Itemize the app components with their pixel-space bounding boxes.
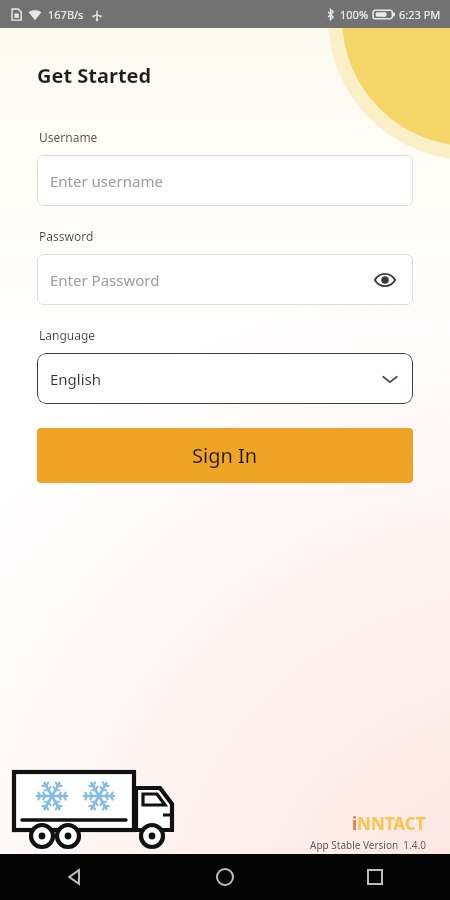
staticText: Password: [39, 228, 94, 244]
staticText: English: [50, 369, 382, 389]
button[interactable]: Back: [0, 854, 150, 900]
staticText: 167B/s: [48, 7, 84, 22]
button[interactable]: English: [37, 353, 413, 404]
button[interactable]: Sign In: [37, 428, 413, 483]
button[interactable]: Enter Password: [37, 254, 413, 305]
staticText: App Stable Version 1.4.0: [310, 838, 426, 852]
button[interactable]: Recent apps: [300, 854, 450, 900]
button[interactable]: Show password: [370, 265, 400, 295]
staticText: 6:23 PM: [399, 7, 441, 22]
staticText: 100%: [340, 7, 369, 22]
button[interactable]: Home: [150, 854, 300, 900]
staticText: Get Started: [37, 62, 152, 89]
staticText: Language: [39, 327, 96, 343]
staticText: Sign In: [192, 442, 258, 469]
staticText: iNNTACT: [352, 812, 426, 835]
staticText: Enter username: [50, 171, 400, 191]
button[interactable]: Enter username: [37, 155, 413, 206]
staticText: Enter Password: [50, 270, 370, 290]
staticText: Username: [39, 129, 98, 145]
